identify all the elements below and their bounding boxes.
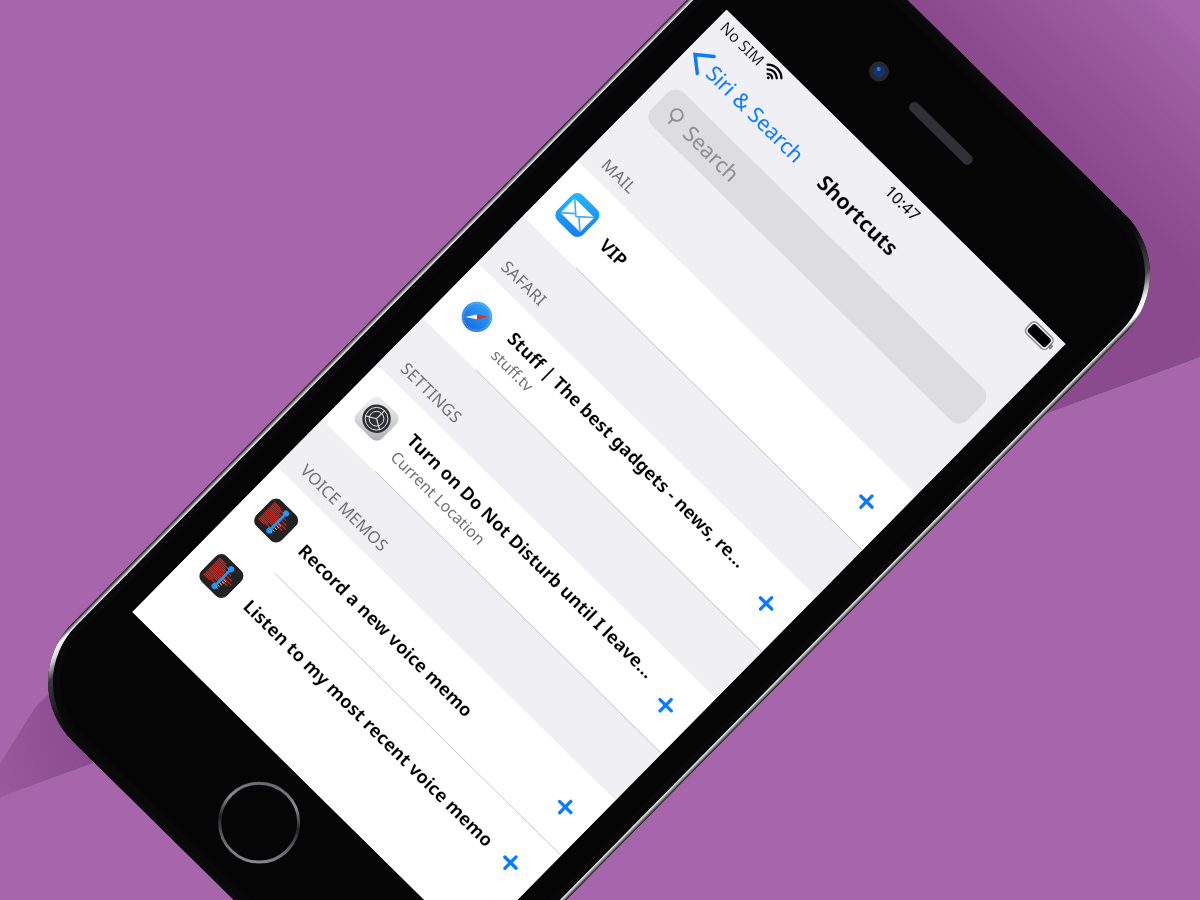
staticText: stuff.tv [486, 344, 539, 396]
staticText: SAFARI [497, 255, 552, 310]
button[interactable]: Search [643, 84, 992, 429]
staticText: VIP [595, 232, 634, 272]
staticText: VOICE MEMOS [296, 459, 394, 556]
staticText: 10:47 [881, 180, 927, 225]
staticText: SETTINGS [397, 357, 468, 427]
button[interactable]: VIP [523, 161, 917, 550]
staticText: Shortcuts [811, 168, 906, 262]
button[interactable]: Turn on Do Not Disturb until I leave… [322, 364, 716, 754]
button[interactable]: Stuff | The best gadgets - news, re… [422, 262, 816, 652]
staticText: Search [677, 119, 747, 188]
staticText: Record a new voice memo [293, 538, 480, 722]
button[interactable]: Add shortcut [843, 477, 890, 524]
staticText: Listen to my most recent voice memo [239, 593, 500, 852]
button[interactable]: Add shortcut [642, 681, 689, 728]
button[interactable]: Listen to my most recent voice memo [167, 522, 561, 900]
staticText: No SIM [715, 17, 770, 71]
staticText: Turn on Do Not Disturb until I leave… [402, 428, 661, 683]
button[interactable]: Add shortcut [743, 579, 789, 626]
staticText: Current Location [386, 446, 490, 549]
button[interactable]: Record a new voice memo [222, 466, 615, 856]
staticText: Siri & Search [700, 58, 812, 169]
button[interactable]: Siri & Search [675, 33, 822, 179]
button[interactable]: Add shortcut [487, 838, 534, 885]
button[interactable]: Add shortcut [542, 783, 589, 830]
staticText: MAIL [597, 153, 642, 198]
staticText: Stuff | The best gadgets - news, re… [503, 326, 753, 573]
